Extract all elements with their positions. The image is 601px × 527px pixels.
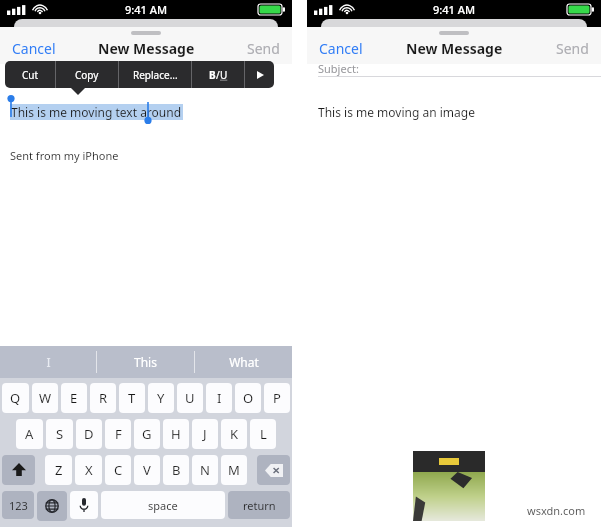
- button[interactable]: B: [163, 455, 189, 485]
- button[interactable]: Copy: [56, 61, 118, 88]
- staticText: 123: [9, 498, 28, 513]
- staticText: K: [230, 425, 239, 443]
- button[interactable]: K: [221, 419, 247, 449]
- staticText: J: [203, 425, 207, 443]
- staticText: Cut: [22, 68, 39, 82]
- staticText: return: [243, 498, 276, 513]
- staticText: Cancel: [12, 39, 56, 58]
- staticText: Sent from my iPhone: [10, 148, 119, 163]
- staticText: wsxdn.com: [527, 503, 586, 518]
- button[interactable]: return: [228, 491, 290, 519]
- button[interactable]: S: [46, 419, 73, 449]
- button[interactable]: [413, 451, 485, 521]
- staticText: B: [172, 461, 181, 479]
- staticText: Q: [10, 389, 21, 407]
- button[interactable]: Shift: [2, 455, 35, 485]
- button[interactable]: Z: [45, 455, 72, 485]
- staticText: Replace...: [133, 68, 178, 82]
- staticText: Send: [556, 39, 589, 58]
- staticText: I: [46, 354, 51, 370]
- staticText: N: [200, 461, 210, 479]
- button[interactable]: Send: [552, 35, 593, 62]
- button[interactable]: J: [192, 419, 218, 449]
- staticText: U: [185, 389, 195, 407]
- staticText: O: [243, 389, 254, 407]
- staticText: D: [84, 425, 94, 443]
- staticText: space: [148, 498, 178, 513]
- button[interactable]: Dictation: [70, 491, 98, 519]
- staticText: T: [128, 389, 136, 407]
- button[interactable]: I: [206, 383, 232, 413]
- button[interactable]: Replace...: [119, 61, 191, 88]
- staticText: C: [114, 461, 123, 479]
- staticText: Cancel: [319, 39, 363, 58]
- button[interactable]: M: [221, 455, 247, 485]
- staticText: Copy: [75, 68, 99, 82]
- button[interactable]: T: [119, 383, 145, 413]
- button[interactable]: P: [264, 383, 290, 413]
- staticText: /: [216, 68, 220, 82]
- staticText: E: [70, 389, 78, 407]
- staticText: S: [56, 425, 64, 443]
- staticText: I: [217, 389, 222, 407]
- button[interactable]: L: [250, 419, 276, 449]
- staticText: Z: [55, 461, 63, 479]
- button[interactable]: B: [192, 61, 244, 88]
- staticText: G: [142, 425, 152, 443]
- staticText: This is me moving text around: [11, 104, 182, 120]
- button[interactable]: W: [32, 383, 58, 413]
- button[interactable]: V: [134, 455, 160, 485]
- button[interactable]: What: [195, 346, 292, 378]
- staticText: U: [220, 68, 228, 82]
- staticText: P: [273, 389, 281, 407]
- button[interactable]: More: [245, 61, 274, 88]
- button[interactable]: Q: [2, 383, 29, 413]
- staticText: V: [143, 461, 151, 479]
- staticText: F: [115, 425, 122, 443]
- staticText: Subject:: [318, 61, 359, 76]
- button[interactable]: 123: [2, 491, 34, 519]
- button[interactable]: U: [177, 383, 203, 413]
- button[interactable]: Y: [148, 383, 174, 413]
- button[interactable]: G: [134, 419, 160, 449]
- button[interactable]: F: [105, 419, 131, 449]
- button[interactable]: Backspace: [257, 455, 290, 485]
- staticText: R: [99, 389, 108, 407]
- button[interactable]: Cancel: [8, 35, 60, 62]
- button[interactable]: N: [192, 455, 218, 485]
- button[interactable]: D: [76, 419, 102, 449]
- staticText: 9:41 AM: [433, 2, 476, 17]
- button[interactable]: Cut: [5, 61, 55, 88]
- button[interactable]: Send: [243, 35, 284, 62]
- staticText: New Message: [406, 39, 503, 58]
- button[interactable]: X: [75, 455, 102, 485]
- staticText: L: [260, 425, 267, 443]
- staticText: W: [39, 389, 52, 407]
- staticText: This: [134, 354, 157, 370]
- button[interactable]: I: [0, 346, 96, 378]
- button[interactable]: C: [105, 455, 131, 485]
- staticText: This is me moving an image: [318, 104, 475, 120]
- button[interactable]: space: [101, 491, 225, 519]
- button[interactable]: Cancel: [315, 35, 367, 62]
- button[interactable]: H: [163, 419, 189, 449]
- staticText: A: [25, 425, 34, 443]
- staticText: Y: [157, 389, 165, 407]
- staticText: H: [171, 425, 181, 443]
- staticText: New Message: [98, 39, 195, 58]
- button[interactable]: This: [97, 346, 194, 378]
- staticText: X: [85, 461, 93, 479]
- button[interactable]: A: [16, 419, 43, 449]
- button[interactable]: R: [90, 383, 116, 413]
- button[interactable]: Emoji keyboard: [37, 491, 67, 521]
- staticText: 9:41 AM: [125, 2, 168, 17]
- staticText: What: [229, 354, 259, 370]
- staticText: B: [209, 68, 216, 82]
- button[interactable]: O: [235, 383, 261, 413]
- staticText: M: [228, 461, 240, 479]
- button[interactable]: E: [61, 383, 87, 413]
- staticText: Send: [247, 39, 280, 58]
